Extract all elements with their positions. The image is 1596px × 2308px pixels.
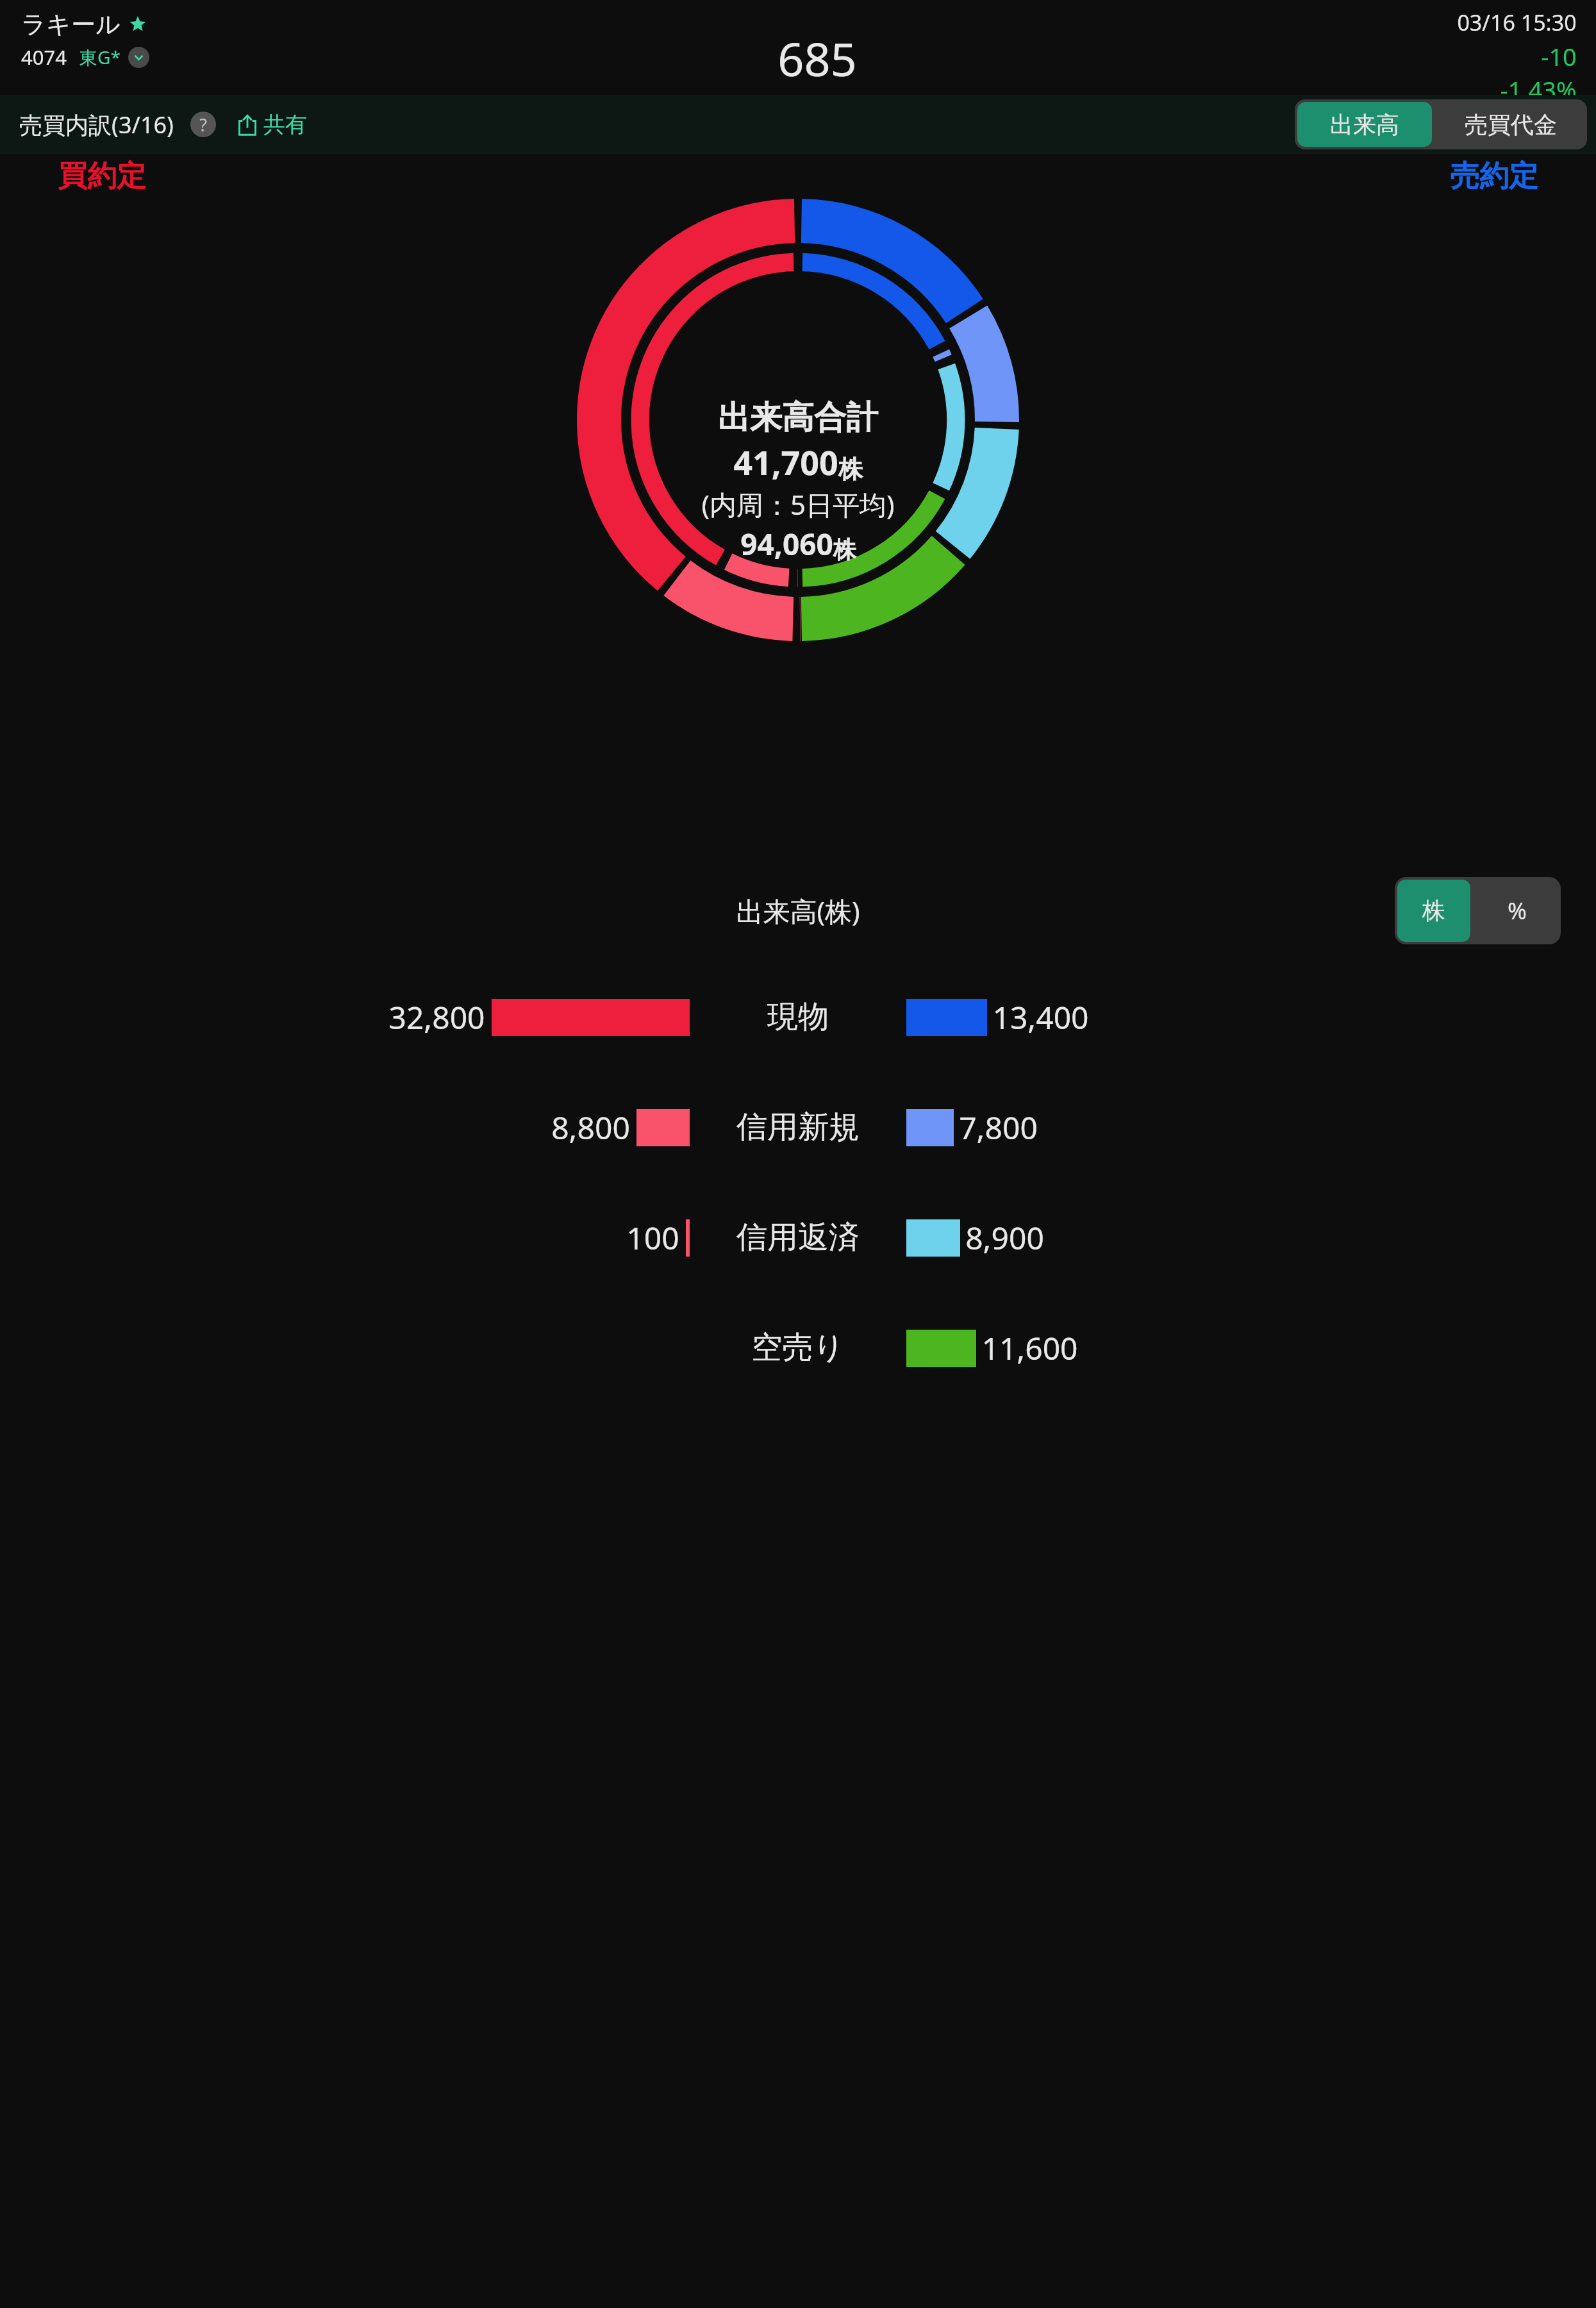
button[interactable]: 株 (1397, 880, 1470, 942)
button[interactable]: Help (190, 112, 216, 137)
staticText: 出来高 (1330, 110, 1399, 139)
button[interactable]: 売買代金 (1437, 102, 1584, 147)
staticText: 32,800 (388, 996, 485, 1038)
staticText: 13,400 (992, 996, 1089, 1038)
staticText: 94,060 (740, 524, 833, 564)
button[interactable]: 8,800 (0, 1072, 1596, 1182)
button[interactable]: 32,800 (0, 962, 1596, 1072)
staticText: 7,800 (959, 1107, 1038, 1148)
staticText: 売買代金 (1465, 110, 1557, 139)
staticText: 共有 (263, 111, 307, 138)
staticText: 買約定 (58, 158, 146, 195)
staticText: % (1508, 895, 1527, 926)
staticText: 4074 (21, 44, 67, 71)
button[interactable]: 共有 (233, 108, 310, 141)
button[interactable]: % (1475, 880, 1558, 942)
staticText: 信用新規 (736, 1108, 860, 1146)
staticText: 出来高(株) (736, 892, 860, 929)
button[interactable]: 100 (0, 1182, 1596, 1292)
staticText: 東G* (79, 45, 121, 69)
staticText: 100 (626, 1217, 679, 1259)
staticText: 出来高合計 (718, 397, 878, 438)
staticText: 売買内訳(3/16) (19, 109, 174, 140)
staticText: 685 (777, 27, 857, 90)
staticText: 03/16 15:30 (1457, 8, 1577, 37)
button[interactable]: Expand market (128, 47, 149, 68)
button[interactable]: 出来高 (1297, 102, 1432, 147)
staticText: 株 (1422, 896, 1445, 925)
staticText: 信用返済 (736, 1218, 860, 1257)
staticText: 株 (838, 454, 863, 485)
staticText: 現物 (767, 998, 829, 1036)
staticText: 売約定 (1450, 158, 1538, 195)
staticText: 株 (833, 535, 856, 564)
button[interactable]: Favorite (129, 16, 146, 33)
staticText: 8,900 (965, 1217, 1044, 1259)
staticText: -1.43% (1500, 73, 1577, 95)
staticText: 8,800 (551, 1107, 630, 1148)
staticText: ラキール (21, 9, 121, 40)
staticText: -10 (1541, 40, 1577, 73)
staticText: ? (199, 113, 207, 137)
staticText: (内周：5日平均) (701, 486, 895, 523)
staticText: 空売り (751, 1328, 845, 1367)
button[interactable]: 空売り (0, 1292, 1596, 1403)
staticText: 11,600 (981, 1327, 1078, 1369)
staticText: 41,700 (733, 439, 838, 485)
